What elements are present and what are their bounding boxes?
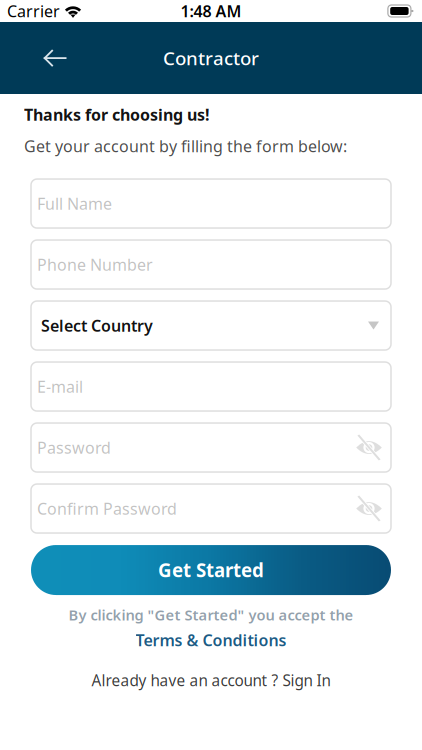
- button[interactable]: Terms & Conditions: [135, 629, 286, 651]
- staticText: E-mail: [37, 376, 83, 397]
- button[interactable]: Confirm Password: [31, 484, 391, 533]
- staticText: Carrier: [7, 0, 60, 22]
- button[interactable]: Select Country: [31, 301, 391, 350]
- button[interactable]: Phone Number: [31, 240, 391, 289]
- button[interactable]: Password: [31, 423, 391, 472]
- staticText: Password: [37, 437, 111, 458]
- staticText: Contractor: [163, 46, 259, 70]
- button[interactable]: Already have an account ? Sign In: [91, 670, 330, 691]
- button[interactable]: Get Started: [31, 545, 391, 595]
- staticText: 1:48 AM: [180, 0, 241, 22]
- button[interactable]: Back: [32, 35, 78, 81]
- staticText: Confirm Password: [37, 498, 177, 519]
- button[interactable]: E-mail: [31, 362, 391, 411]
- staticText: Phone Number: [37, 254, 153, 275]
- staticText: Full Name: [37, 193, 112, 214]
- staticText: Get your account by filling the form bel…: [24, 135, 347, 157]
- staticText: Thanks for choosing us!: [24, 104, 210, 125]
- staticText: Terms & Conditions: [135, 629, 286, 651]
- staticText: Select Country: [41, 315, 153, 336]
- staticText: Get Started: [158, 558, 264, 582]
- button[interactable]: Full Name: [31, 179, 391, 228]
- staticText: Already have an account ? Sign In: [91, 670, 330, 691]
- staticText: By clicking "Get Started" you accept the: [68, 605, 353, 624]
